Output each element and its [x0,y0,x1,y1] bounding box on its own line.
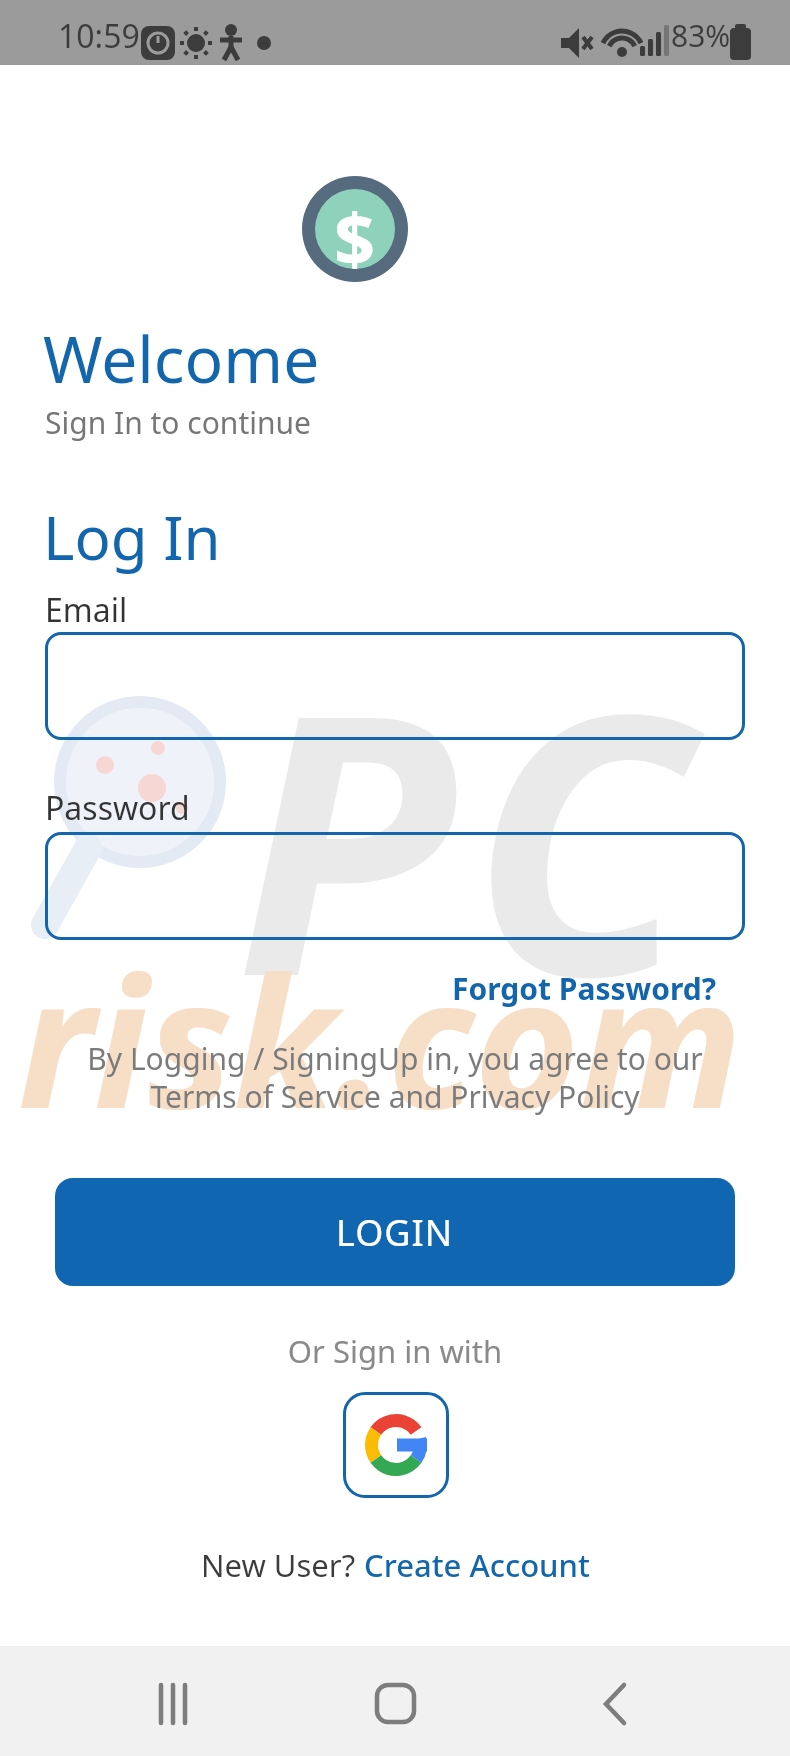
staticText: Forgot Password? [452,968,717,1009]
staticText: Or Sign in with [0,1330,790,1372]
staticText: Welcome [43,315,320,402]
staticText: New User? [201,1544,364,1586]
staticText: $ [334,189,376,269]
button[interactable]: Forgot Password? [452,968,717,1009]
staticText: P [235,590,455,1080]
staticText: Password [45,786,190,830]
staticText: 10:59 [58,14,140,58]
staticText: Create Account [364,1544,590,1586]
button[interactable] [45,632,745,740]
staticText: C [470,590,691,1080]
staticText: LOGIN [336,1208,454,1257]
staticText: By Logging / SigningUp in, you agree to … [0,1038,790,1117]
button[interactable] [584,1671,650,1737]
staticText: Log In [43,496,221,578]
button[interactable] [362,1671,428,1737]
staticText: 83% [671,15,731,56]
staticText: risk.com [18,916,790,1161]
staticText: Sign In to continue [45,402,311,443]
button[interactable] [343,1392,449,1498]
button[interactable]: LOGIN [55,1178,735,1286]
staticText: Email [45,588,128,632]
button[interactable]: Create Account [364,1544,590,1586]
button[interactable] [140,1671,206,1737]
button[interactable] [45,832,745,940]
